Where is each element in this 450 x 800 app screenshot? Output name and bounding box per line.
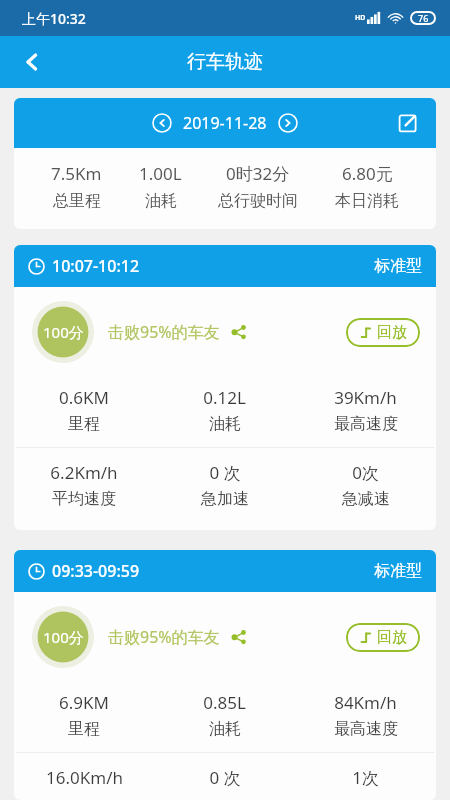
button[interactable]: Share (228, 321, 250, 343)
button[interactable]: 10:07-10:12 (14, 245, 436, 530)
staticText: 6.2Km/h (50, 461, 118, 484)
staticText: 76 (418, 12, 429, 24)
staticText: 6.9KM (59, 691, 109, 714)
staticText: 09:33-09:59 (52, 560, 140, 582)
staticText: 回放 (377, 628, 407, 647)
button[interactable]: 09:33-09:59 (14, 550, 436, 800)
staticText: 0 次 (209, 766, 241, 787)
staticText: 标准型 (374, 256, 422, 276)
staticText: 0.85L (203, 691, 246, 714)
button[interactable]: Back (8, 38, 56, 86)
staticText: 击败95%的车友 (108, 626, 220, 648)
staticText: 最高速度 (334, 719, 398, 739)
staticText: 总行驶时间 (218, 191, 298, 211)
staticText: 16.0Km/h (46, 766, 123, 787)
staticText: 总里程 (53, 191, 101, 211)
staticText: 本日消耗 (335, 191, 399, 211)
staticText: 1次 (352, 766, 379, 787)
button[interactable]: Edit (388, 103, 428, 143)
staticText: 7.5Km (51, 162, 102, 185)
staticText: 0 次 (209, 461, 241, 484)
staticText: 最高速度 (334, 414, 398, 434)
staticText: 6.80元 (342, 162, 393, 185)
staticText: 急加速 (201, 489, 249, 509)
staticText: 里程 (68, 414, 100, 434)
staticText: 平均速度 (52, 489, 116, 509)
staticText: 100分 (43, 627, 84, 647)
staticText: 2019-11-28 (183, 112, 267, 134)
staticText: 100分 (43, 322, 84, 342)
button[interactable]: 回放 (346, 318, 420, 347)
staticText: 10:07-10:12 (52, 255, 140, 277)
staticText: 1.00L (139, 162, 182, 185)
button[interactable]: 回放 (346, 623, 420, 652)
staticText: 标准型 (374, 561, 422, 581)
staticText: 0次 (352, 461, 379, 484)
button[interactable]: Share (228, 626, 250, 648)
button[interactable]: Next day (271, 106, 305, 140)
staticText: 上午10:32 (22, 9, 86, 28)
button[interactable]: Previous day (145, 106, 179, 140)
staticText: 0.12L (203, 386, 246, 409)
staticText: 油耗 (209, 719, 241, 739)
staticText: 急减速 (342, 489, 390, 509)
staticText: 油耗 (209, 414, 241, 434)
staticText: 行车轨迹 (187, 50, 263, 74)
staticText: 里程 (68, 719, 100, 739)
staticText: 84Km/h (334, 691, 397, 714)
staticText: HD (355, 13, 366, 23)
staticText: 39Km/h (334, 386, 397, 409)
staticText: 0.6KM (59, 386, 109, 409)
staticText: 油耗 (145, 191, 177, 211)
staticText: 0时32分 (226, 162, 290, 185)
staticText: 回放 (377, 323, 407, 342)
staticText: 击败95%的车友 (108, 321, 220, 343)
